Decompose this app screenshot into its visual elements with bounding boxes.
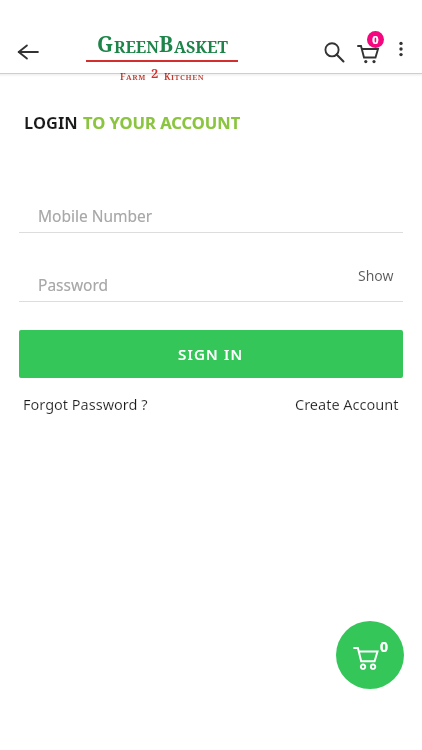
staticText: SIGN IN [178,344,244,364]
button[interactable]: SIGN IN [19,330,403,378]
button[interactable]: Back [8,32,48,72]
staticText: ARM [126,72,146,82]
staticText: Forgot Password ? [23,394,148,414]
staticText: LOGIN [24,111,83,133]
staticText: 0 [372,32,379,47]
staticText: TO YOUR ACCOUNT [83,111,241,133]
staticText: ITCHEN [171,72,205,82]
staticText: Create Account [295,394,399,414]
staticText: B [159,30,174,59]
staticText: REEN [114,36,159,58]
staticText: ASKET [174,36,228,58]
button[interactable]: Cart, 0 items [348,30,390,72]
button[interactable]: More options [384,32,418,66]
staticText: K [164,70,171,82]
button[interactable]: Forgot Password ? [23,394,148,414]
staticText: 2 [151,64,159,82]
button[interactable]: Password [0,267,422,301]
staticText: G [97,30,114,59]
staticText: Password [38,274,109,295]
staticText: Show [358,266,394,285]
button[interactable]: Search [314,32,354,72]
button[interactable]: Mobile Number [0,198,422,232]
button[interactable]: Create Account [295,394,399,414]
staticText: Mobile Number [38,205,153,226]
staticText: F [120,70,126,82]
button[interactable]: Cart, 0 items [336,621,404,689]
button[interactable]: Show [358,266,394,285]
staticText: 0 [380,637,389,656]
